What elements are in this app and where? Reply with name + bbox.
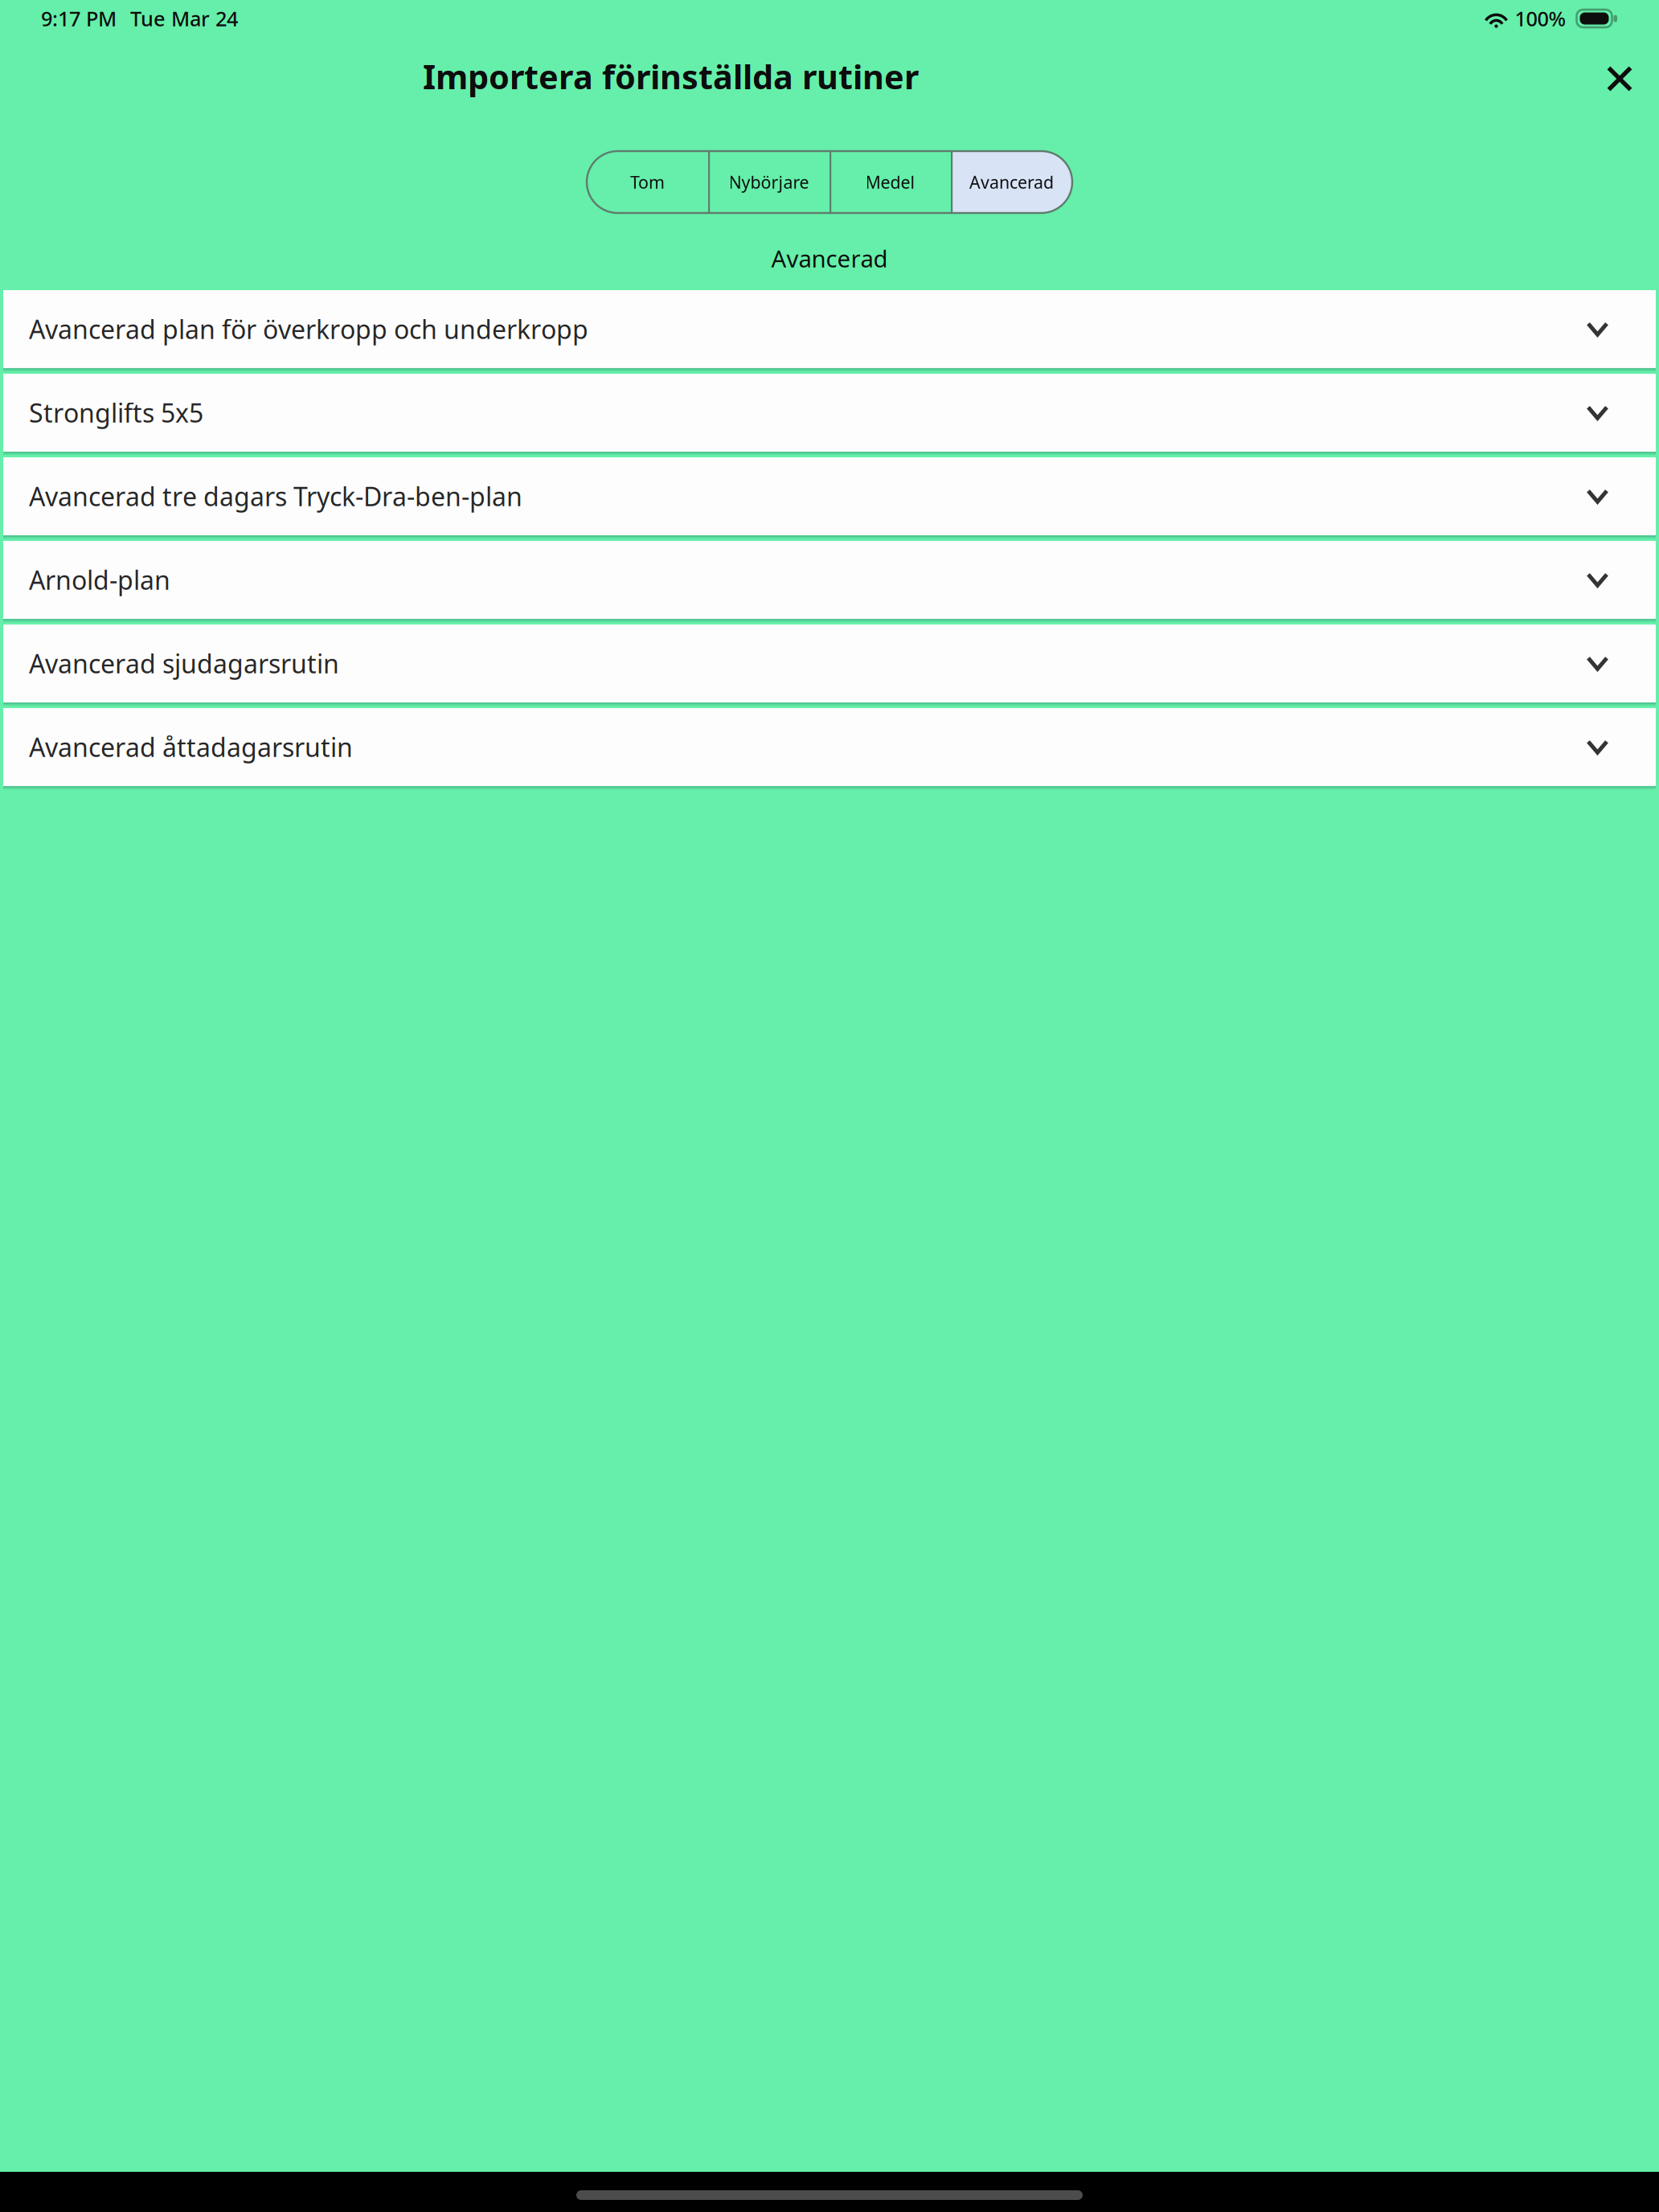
staticText: Avancerad tre dagars Tryck-Dra-ben-plan: [29, 479, 522, 513]
staticText: Avancerad: [771, 243, 888, 274]
button[interactable]: Avancerad sjudagarsrutin: [3, 625, 1656, 706]
staticText: Avancerad: [969, 171, 1054, 193]
button[interactable]: Arnold-plan: [3, 541, 1656, 622]
button[interactable]: Medel: [829, 151, 951, 213]
staticText: Avancerad sjudagarsrutin: [29, 646, 339, 681]
staticText: Avancerad plan för överkropp och underkr…: [29, 312, 588, 346]
staticText: Tue Mar 24: [130, 5, 238, 32]
staticText: Nybörjare: [729, 171, 809, 193]
button[interactable]: Nybörjare: [708, 151, 829, 213]
staticText: Arnold-plan: [29, 563, 170, 597]
staticText: 100%: [1515, 5, 1566, 32]
button[interactable]: Avancerad: [951, 151, 1072, 213]
button[interactable]: Avancerad åttadagarsrutin: [3, 708, 1656, 789]
button[interactable]: Avancerad tre dagars Tryck-Dra-ben-plan: [3, 457, 1656, 539]
button[interactable]: Stäng: [1591, 46, 1648, 107]
staticText: Importera förinställda rutiner: [423, 54, 919, 98]
button[interactable]: Avancerad plan för överkropp och underkr…: [3, 290, 1656, 371]
staticText: Medel: [865, 171, 915, 193]
button[interactable]: Tom: [587, 151, 708, 213]
staticText: Stronglifts 5x5: [29, 396, 203, 430]
staticText: Tom: [630, 171, 665, 193]
staticText: 9:17 PM: [41, 5, 117, 32]
staticText: Avancerad åttadagarsrutin: [29, 730, 353, 764]
button[interactable]: Stronglifts 5x5: [3, 374, 1656, 455]
